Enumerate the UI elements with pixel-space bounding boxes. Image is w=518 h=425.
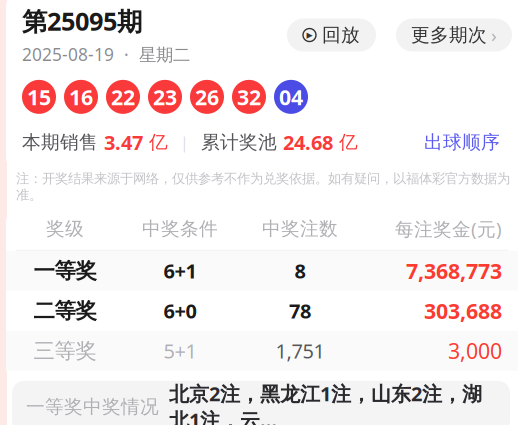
staticText: 中奖注数: [262, 217, 338, 240]
staticText: 8: [294, 257, 305, 284]
staticText: 16: [69, 83, 93, 111]
staticText: 三等奖: [33, 338, 96, 364]
staticText: 23: [153, 83, 177, 111]
staticText: 32: [237, 83, 261, 111]
staticText: 78: [289, 297, 311, 324]
staticText: 更多期次: [411, 24, 487, 46]
staticText: 第25095期: [22, 4, 142, 38]
staticText: 26: [195, 83, 219, 111]
staticText: 24.68: [283, 129, 333, 156]
staticText: 累计奖池: [201, 131, 283, 154]
staticText: 15: [27, 83, 51, 111]
staticText: 回放: [322, 24, 360, 46]
staticText: 2025-08-19 · 星期二: [22, 43, 190, 66]
staticText: 奖级: [46, 217, 84, 240]
staticText: 一等奖中奖情况: [26, 395, 159, 418]
button[interactable]: 出球顺序: [422, 127, 502, 158]
staticText: 本期销售: [22, 131, 104, 154]
button[interactable]: 更多期次: [396, 18, 512, 51]
staticText: 303,688: [424, 297, 502, 325]
staticText: ›: [491, 23, 497, 47]
staticText: 6+0: [163, 297, 196, 324]
button[interactable]: 一等奖中奖情况: [12, 381, 510, 425]
staticText: 亿: [143, 131, 168, 154]
staticText: |: [168, 132, 201, 153]
staticText: 亿: [333, 131, 358, 154]
staticText: 3.47: [104, 129, 143, 156]
staticText: 注：开奖结果来源于网络，仅供参考不作为兑奖依据。如有疑问，以福体彩官方数据为准。: [16, 170, 510, 203]
staticText: 1,751: [275, 337, 324, 364]
staticText: ▶: [306, 30, 312, 40]
staticText: 每注奖金(元): [395, 216, 502, 241]
staticText: 5+1: [163, 337, 196, 364]
staticText: 中奖条件: [142, 217, 218, 240]
button[interactable]: ▶: [287, 18, 376, 51]
staticText: 3,000: [448, 337, 502, 365]
staticText: 二等奖: [33, 298, 96, 324]
staticText: 04: [279, 83, 303, 111]
staticText: 6+1: [163, 257, 196, 284]
staticText: 北京2注，黑龙江1注，山东2注，湖北1注，云…: [169, 380, 482, 425]
staticText: 一等奖: [33, 258, 96, 284]
staticText: 出球顺序: [424, 131, 500, 154]
staticText: 7,368,773: [406, 257, 502, 285]
staticText: 22: [111, 83, 135, 111]
